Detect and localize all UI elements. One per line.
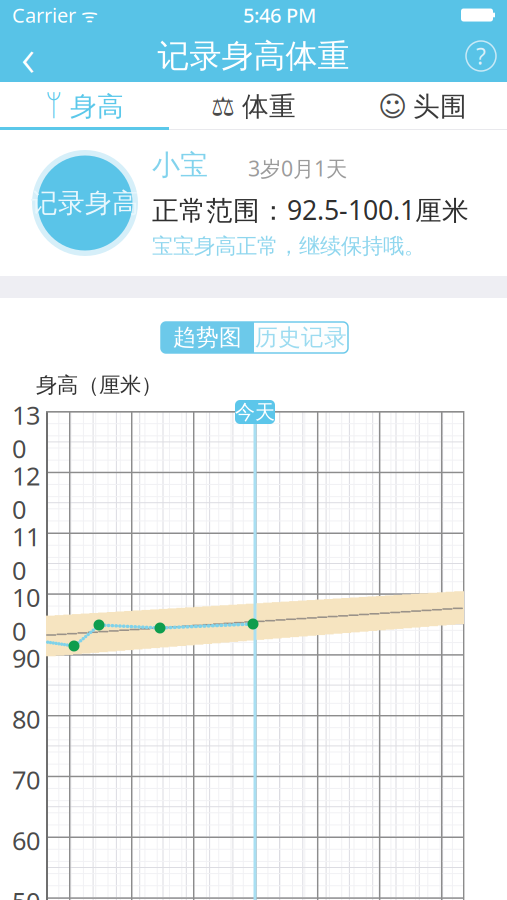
staticText: ? — [476, 41, 486, 71]
staticText: 小宝 — [152, 148, 208, 182]
staticText: ☺ — [378, 91, 407, 122]
staticText: 80 — [12, 702, 40, 736]
button[interactable]: 趋势图 — [161, 322, 254, 353]
staticText: ‹ — [21, 21, 35, 91]
staticText: 正常范围：92.5-100.1厘米 — [152, 192, 469, 227]
staticText: 100 — [12, 580, 40, 648]
staticText: 70 — [12, 763, 40, 796]
button[interactable]: 历史记录 — [254, 322, 348, 353]
staticText: 120 — [12, 459, 40, 526]
button[interactable]: 记录身高 — [30, 148, 140, 258]
staticText: Carrier — [12, 2, 76, 28]
button[interactable]: ᛘ — [0, 83, 169, 130]
button[interactable]: 帮助 — [455, 30, 507, 82]
button[interactable]: ☺ — [338, 83, 507, 130]
staticText: ⚖ — [211, 91, 235, 122]
staticText: 记录身高体重 — [157, 36, 349, 76]
staticText: 130 — [12, 398, 40, 465]
staticText: 今天 — [235, 400, 275, 424]
staticText: 60 — [12, 824, 40, 857]
staticText: 宝宝身高正常，继续保持哦。 — [152, 233, 425, 259]
staticText: 趋势图 — [173, 324, 242, 351]
staticText: 头围 — [413, 90, 467, 123]
staticText: ᯤ — [76, 3, 98, 27]
staticText: 110 — [12, 520, 40, 587]
staticText: 记录身高 — [31, 187, 139, 219]
button[interactable]: 返回 — [0, 30, 56, 82]
staticText: 3岁0月1天 — [248, 154, 347, 182]
staticText: ᛘ — [45, 92, 63, 121]
staticText: 身高（厘米） — [36, 372, 162, 398]
staticText: 身高 — [70, 90, 124, 123]
staticText: 90 — [12, 641, 40, 675]
staticText: 50 — [12, 884, 40, 900]
staticText: 5:46 PM — [243, 2, 316, 28]
staticText: 历史记录 — [255, 324, 347, 351]
staticText: 体重 — [242, 90, 296, 123]
button[interactable]: ⚖ — [169, 83, 338, 130]
